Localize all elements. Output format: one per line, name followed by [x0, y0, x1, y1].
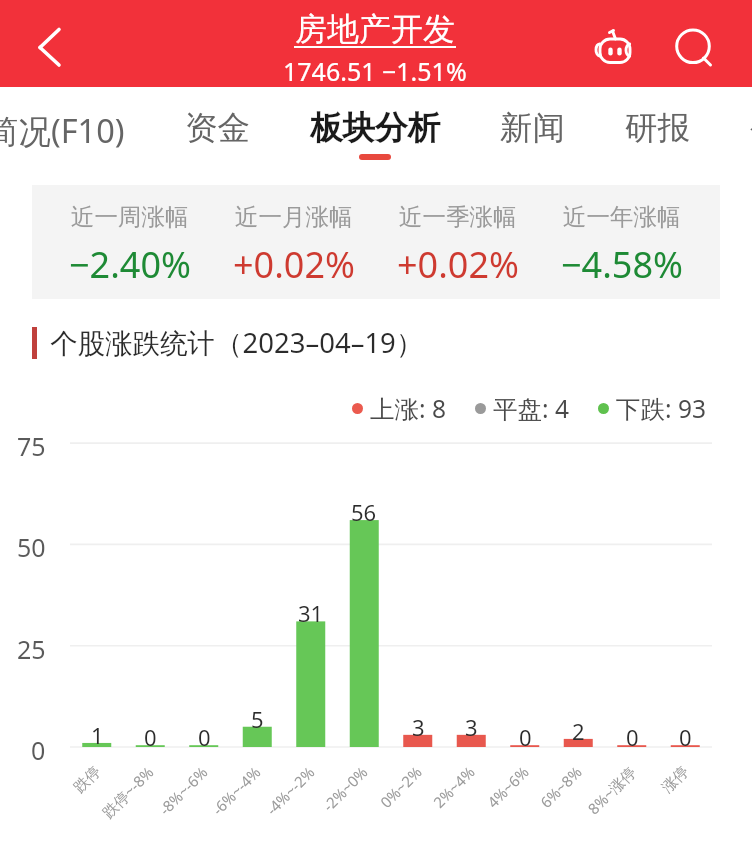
staticText: −4.58% — [561, 240, 683, 289]
staticText: 56 — [351, 497, 377, 523]
staticText: 跌停 — [70, 762, 105, 797]
button[interactable]: Search — [669, 22, 717, 70]
staticText: 0 — [519, 722, 532, 748]
button[interactable]: 近一季涨幅 — [376, 202, 540, 289]
staticText: 1746.51 −1.51% — [283, 54, 467, 88]
button[interactable]: 下跌: 93 — [598, 392, 706, 425]
staticText: 资金 — [185, 108, 250, 149]
staticText: 2 — [572, 716, 585, 742]
button[interactable]: 板块分析 — [310, 87, 440, 165]
button[interactable]: 资金 — [185, 87, 250, 165]
staticText: 0 — [626, 722, 639, 748]
staticText: 0 — [31, 733, 46, 763]
staticText: 3 — [412, 712, 425, 738]
staticText: 跌停~-8% — [98, 762, 158, 822]
staticText: 0 — [144, 722, 157, 748]
staticText: 近一周涨幅 — [71, 202, 189, 232]
button[interactable]: 研报 — [625, 87, 690, 165]
staticText: 6%~8% — [536, 762, 586, 812]
staticText: 1 — [91, 720, 104, 746]
staticText: 25 — [17, 632, 46, 662]
staticText: -8%~-6% — [155, 762, 212, 819]
staticText: -4%~-2% — [262, 762, 319, 819]
button[interactable]: Back — [20, 18, 78, 76]
staticText: 4%~6% — [483, 762, 533, 812]
staticText: +0.02% — [233, 240, 355, 289]
staticText: +0.02% — [397, 240, 519, 289]
button[interactable]: 平盘: 4 — [475, 392, 569, 425]
staticText: 5 — [251, 704, 264, 730]
staticText: 50 — [17, 530, 46, 560]
button[interactable]: 近一月涨幅 — [212, 202, 376, 289]
staticText: 31 — [298, 598, 324, 624]
staticText: 新闻 — [500, 108, 565, 149]
staticText: -2%~0% — [318, 762, 372, 815]
button[interactable]: 近一周涨幅 — [47, 202, 212, 289]
staticText: 公告 — [750, 108, 752, 149]
button[interactable]: 简况(F10) — [0, 87, 125, 165]
staticText: 0%~2% — [376, 762, 426, 812]
staticText: 0 — [679, 722, 692, 748]
button[interactable]: 公告 — [750, 87, 752, 165]
staticText: 下跌: 93 — [616, 392, 706, 425]
staticText: 研报 — [625, 108, 690, 149]
staticText: 近一年涨幅 — [563, 202, 681, 232]
staticText: -6%~-4% — [208, 762, 265, 819]
staticText: 涨停 — [658, 762, 693, 797]
button[interactable]: 新闻 — [500, 87, 565, 165]
staticText: 房地产开发 — [295, 9, 455, 49]
staticText: 板块分析 — [310, 108, 440, 149]
staticText: 近一季涨幅 — [399, 202, 517, 232]
button[interactable]: AI assistant — [591, 20, 639, 68]
staticText: 个股涨跌统计（2023–04–19） — [50, 324, 424, 362]
staticText: 近一月涨幅 — [235, 202, 353, 232]
button[interactable]: 近一年涨幅 — [540, 202, 704, 289]
staticText: 75 — [17, 429, 46, 459]
staticText: 2%~4% — [429, 762, 479, 812]
staticText: 8%~涨停 — [583, 762, 640, 818]
staticText: −2.40% — [69, 240, 191, 289]
staticText: 0 — [198, 722, 211, 748]
staticText: 平盘: 4 — [493, 392, 569, 425]
staticText: 简况(F10) — [0, 108, 125, 152]
staticText: 3 — [465, 712, 478, 738]
button[interactable]: 上涨: 8 — [352, 392, 446, 425]
staticText: 上涨: 8 — [370, 392, 446, 425]
